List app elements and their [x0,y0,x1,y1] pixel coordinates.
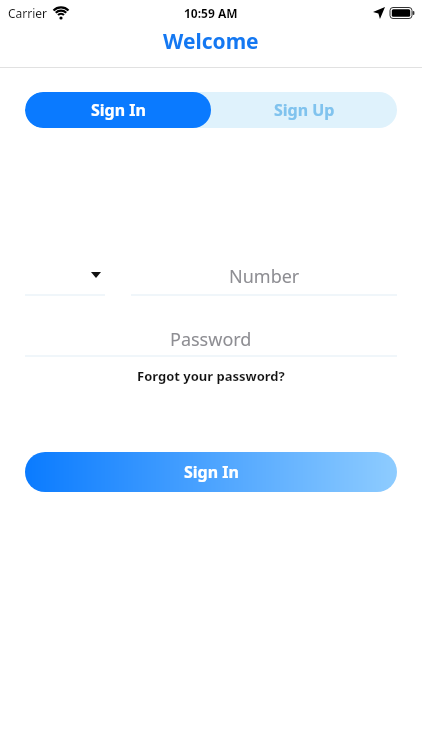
button[interactable]: Sign In [25,92,211,128]
button[interactable]: Sign Up [211,92,397,128]
button[interactable] [25,258,105,296]
staticText: Sign Up [274,99,335,121]
button[interactable]: Forgot your password? [131,367,291,385]
staticText: Welcome [163,27,259,56]
button[interactable]: Number [131,264,397,288]
staticText: 10:59 AM [184,5,238,21]
staticText: Forgot your password? [137,367,285,385]
staticText: Number [229,264,300,288]
button[interactable]: Sign In [25,452,397,492]
button[interactable]: Password [25,327,397,351]
staticText: Sign In [184,461,239,483]
staticText: Carrier [8,5,48,21]
staticText: Password [170,327,252,351]
staticText: Sign In [91,99,146,121]
